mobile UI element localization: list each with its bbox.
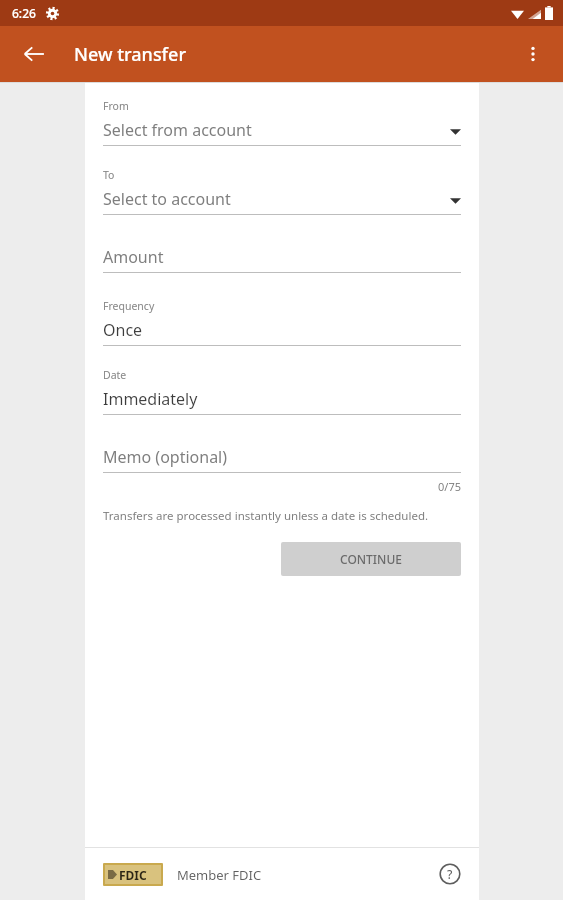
button[interactable]: From — [103, 99, 461, 146]
button[interactable]: Frequency — [103, 299, 461, 346]
button[interactable]: Amount — [103, 245, 461, 273]
staticText: Memo (optional) — [103, 446, 228, 468]
staticText: Select to account — [103, 188, 231, 210]
staticText: CONTINUE — [340, 551, 402, 567]
staticText: From — [103, 99, 129, 113]
button[interactable]: Memo (optional) — [103, 445, 461, 473]
staticText: Once — [103, 319, 143, 341]
staticText: Transfers are processed instantly unless… — [103, 508, 429, 524]
button[interactable]: To — [103, 168, 461, 215]
button[interactable]: More options — [511, 32, 555, 76]
staticText: ? — [447, 866, 453, 882]
button[interactable]: Help — [433, 857, 467, 891]
button[interactable]: Date — [103, 368, 461, 415]
staticText: Frequency — [103, 299, 155, 313]
staticText: Amount — [103, 246, 164, 268]
staticText: Immediately — [103, 388, 198, 410]
staticText: FDIC — [119, 867, 147, 883]
staticText: To — [103, 168, 115, 182]
staticText: 0/75 — [438, 479, 461, 494]
button[interactable]: Back — [10, 30, 58, 78]
staticText: 6:26 — [12, 5, 36, 21]
staticText: Date — [103, 368, 127, 382]
staticText: Select from account — [103, 119, 252, 141]
staticText: Member FDIC — [177, 866, 262, 884]
button[interactable]: CONTINUE — [281, 542, 461, 576]
staticText: New transfer — [74, 42, 186, 67]
